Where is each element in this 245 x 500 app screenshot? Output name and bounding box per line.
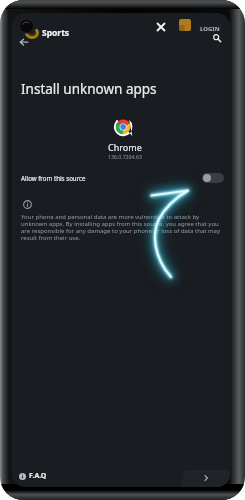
button[interactable]: Search (211, 32, 222, 43)
button[interactable]: Allow from this source (12, 170, 230, 186)
staticText: LOGIN (200, 25, 220, 33)
button[interactable]: Back (18, 36, 29, 47)
staticText: Chrome (108, 141, 142, 153)
staticText: 136.0.7204.63 (108, 153, 142, 160)
staticText: Your phone and personal data are more vu… (21, 213, 225, 242)
button[interactable]: Allow from this source (202, 173, 224, 183)
staticText: F.A.Q (29, 471, 47, 481)
button[interactable]: App shortcut (179, 19, 191, 31)
button[interactable]: LOGIN (198, 24, 222, 34)
button[interactable]: Next (182, 470, 230, 487)
staticText: Allow from this source (21, 174, 86, 182)
button[interactable]: F.A.Q (12, 467, 53, 487)
button[interactable]: Sports channel (19, 19, 39, 39)
staticText: Sports (42, 27, 70, 39)
staticText: Install unknown apps (21, 80, 157, 98)
button[interactable]: Close (154, 20, 168, 34)
